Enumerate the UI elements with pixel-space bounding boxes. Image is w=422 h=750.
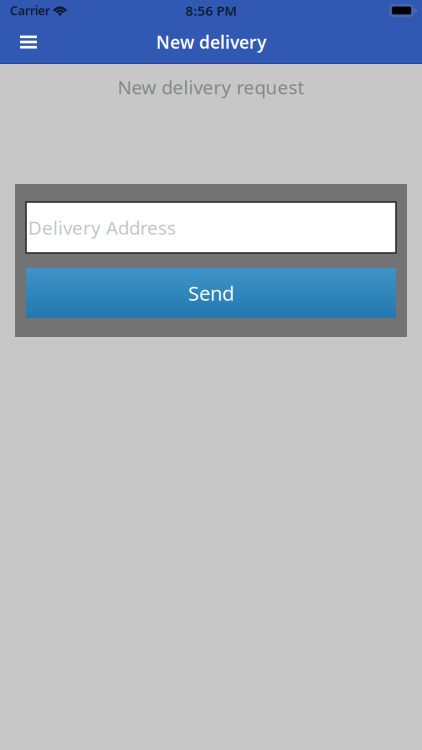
staticText: New delivery request — [117, 75, 304, 99]
staticText: 8:56 PM — [185, 2, 236, 19]
staticText: Carrier — [10, 2, 50, 18]
button[interactable]: Delivery Address — [26, 202, 396, 253]
staticText: Delivery Address — [28, 215, 176, 240]
button[interactable]: Menu — [13, 27, 44, 57]
button[interactable]: Send — [26, 268, 396, 318]
staticText: Send — [188, 280, 234, 306]
staticText: New delivery — [156, 30, 266, 53]
